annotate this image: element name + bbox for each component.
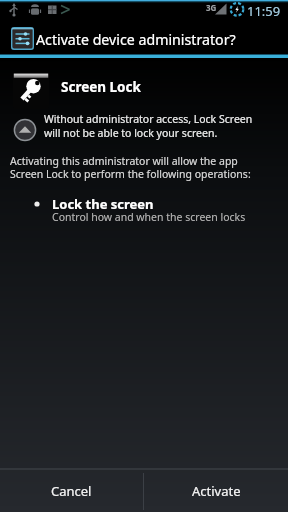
staticText: Activate xyxy=(192,482,241,500)
staticText: Without administrator access, Lock Scree… xyxy=(44,112,253,126)
staticText: Lock the screen xyxy=(52,195,154,213)
staticText: Activate device administrator? xyxy=(36,30,236,49)
button[interactable]: Activate xyxy=(144,470,288,512)
button[interactable]: Cancel xyxy=(0,470,143,512)
staticText: Activating this administrator will allow… xyxy=(10,154,238,168)
staticText: 11:59 xyxy=(247,2,281,20)
staticText: Screen Lock xyxy=(61,78,141,96)
button[interactable] xyxy=(0,110,288,144)
staticText: will not be able to lock your screen. xyxy=(44,126,218,140)
staticText: Cancel xyxy=(51,482,92,500)
staticText: Screen Lock to perform the following ope… xyxy=(10,167,251,181)
staticText: Control how and when the screen locks xyxy=(52,210,246,224)
staticText: 3G xyxy=(206,2,217,13)
